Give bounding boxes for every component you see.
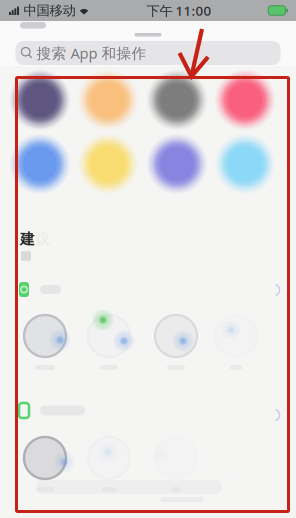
button[interactable] (19, 403, 85, 418)
staticText: 中国移动 (23, 2, 75, 19)
button[interactable] (214, 314, 258, 370)
button[interactable] (87, 314, 131, 370)
staticText: 议 (35, 230, 50, 248)
button[interactable] (19, 282, 61, 297)
button[interactable] (23, 314, 67, 370)
button[interactable] (23, 436, 67, 492)
button[interactable] (154, 314, 198, 370)
button[interactable] (87, 436, 131, 492)
staticText: 搜索 App 和操作 (36, 43, 146, 63)
staticText: 建 (20, 230, 35, 248)
staticText: 下午 11:00 (146, 2, 211, 19)
button[interactable]: 搜索 App 和操作 (15, 41, 280, 65)
